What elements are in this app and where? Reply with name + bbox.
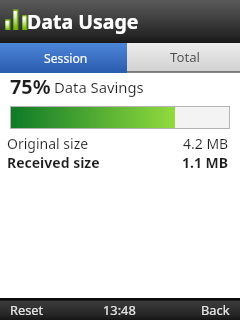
button[interactable]: Reset [0,298,103,320]
button[interactable]: Total [127,43,240,73]
staticText: 1.1 MB [182,153,229,172]
staticText: 4.2 MB [183,134,229,153]
staticText: Data Savings [54,77,144,97]
staticText: Reset [10,301,44,318]
button[interactable]: Session [0,43,127,73]
staticText: Data Usage [27,8,139,35]
staticText: 13:48 [103,301,136,318]
staticText: Total [170,48,200,66]
button[interactable]: Back [136,298,240,320]
staticText: Back [201,301,230,318]
staticText: Session [44,50,88,67]
staticText: 75% [10,73,51,100]
staticText: Original size [7,134,89,153]
staticText: Received size [7,153,100,172]
